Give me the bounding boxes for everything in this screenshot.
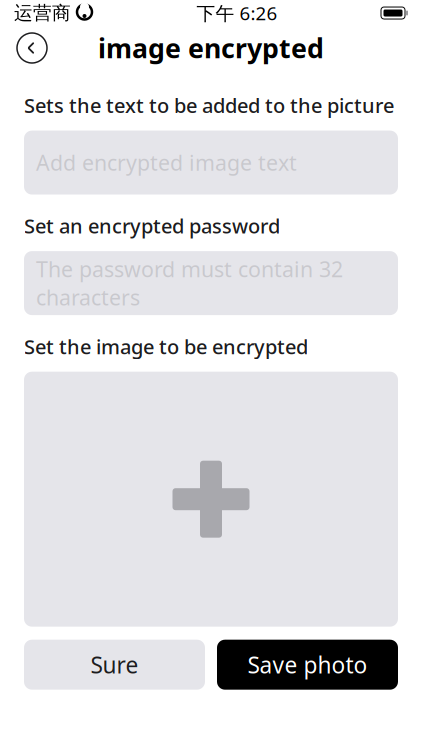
button[interactable]: Save photo (217, 640, 398, 690)
staticText: 下午 6:26 (196, 1, 277, 25)
button[interactable]: Back (10, 26, 54, 70)
staticText: Add encrypted image text (36, 148, 297, 177)
staticText: Save photo (247, 650, 367, 680)
staticText: Set an encrypted password (24, 213, 280, 239)
button[interactable]: The password must contain 32 characters (24, 251, 398, 315)
staticText: The password must contain 32 characters (36, 255, 343, 311)
staticText: image encrypted (98, 30, 324, 66)
staticText: Sets the text to be added to the picture (24, 92, 394, 119)
button[interactable]: Add image (24, 372, 398, 627)
staticText: Set the image to be encrypted (24, 333, 308, 360)
button[interactable]: Add encrypted image text (24, 131, 398, 195)
staticText: 运营商 (14, 1, 71, 24)
staticText: Sure (90, 650, 138, 680)
button[interactable]: Sure (24, 640, 205, 690)
